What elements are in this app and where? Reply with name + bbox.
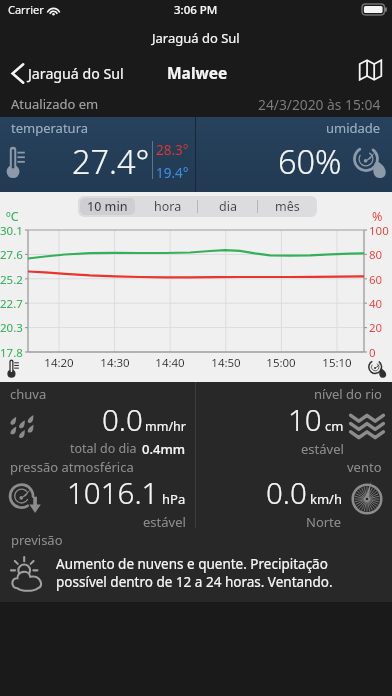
staticText: 1016.1	[67, 472, 159, 512]
staticText: 17.8	[0, 345, 24, 361]
staticText: 24/3/2020 às 15:04	[258, 95, 381, 114]
staticText: mm/hr	[145, 418, 186, 435]
staticText: 0.4mm	[142, 440, 186, 455]
staticText: 60	[369, 272, 383, 288]
staticText: Carrier	[8, 2, 44, 17]
staticText: 20	[369, 320, 383, 336]
staticText: 14:30	[97, 355, 133, 371]
button[interactable]: pressão atmosférica	[0, 455, 195, 528]
staticText: 100	[369, 223, 389, 239]
staticText: 10	[288, 399, 322, 439]
button[interactable]: chuva	[0, 382, 195, 455]
button[interactable]: temperatura	[0, 117, 195, 192]
button[interactable]: Back to Jaraguá do Sul	[0, 53, 132, 86]
staticText: Malwee	[167, 62, 228, 83]
staticText: 0.0	[266, 472, 307, 512]
staticText: Aumento de nuvens e quente. Precipitação…	[56, 555, 378, 591]
staticText: estável	[143, 513, 186, 528]
staticText: previsão	[11, 531, 63, 549]
staticText: 0	[369, 345, 376, 361]
staticText: 3:06 PM	[174, 2, 218, 18]
button[interactable]: nível do rio	[196, 382, 392, 455]
staticText: 27.6	[0, 247, 24, 263]
staticText: Jaraguá do Sul	[152, 29, 240, 47]
staticText: hora	[154, 198, 182, 215]
staticText: temperatura	[11, 119, 89, 137]
staticText: 10 min	[87, 198, 128, 215]
staticText: 30.1	[0, 223, 24, 239]
staticText: 0.0	[102, 399, 143, 439]
staticText: 25.2	[0, 272, 24, 288]
button[interactable]: previsão	[0, 528, 392, 602]
staticText: 20.3	[0, 320, 24, 336]
staticText: 28.3°	[156, 141, 189, 159]
staticText: Atualizado em	[11, 95, 99, 113]
staticText: 80	[369, 247, 383, 263]
staticText: 14:40	[152, 355, 188, 371]
staticText: 15:00	[263, 355, 299, 371]
button[interactable]: umidade	[196, 117, 392, 192]
button[interactable]: hora	[140, 198, 195, 215]
staticText: nível do rio	[314, 385, 382, 403]
button[interactable]: mês	[260, 198, 315, 215]
staticText: 27.4°	[72, 139, 150, 183]
staticText: Norte	[306, 513, 342, 528]
staticText: 19.4°	[156, 164, 189, 182]
staticText: total do dia	[70, 440, 137, 455]
staticText: 60%	[278, 139, 342, 183]
button[interactable]: Map	[348, 48, 392, 91]
button[interactable]: vento	[196, 455, 392, 528]
staticText: 14:50	[208, 355, 244, 371]
staticText: vento	[347, 458, 382, 476]
staticText: Jaraguá do Sul	[28, 64, 124, 83]
staticText: 22.7	[0, 296, 24, 312]
staticText: 40	[369, 296, 383, 312]
staticText: cm	[325, 417, 344, 435]
staticText: %	[372, 208, 383, 225]
staticText: 14:20	[41, 355, 77, 371]
staticText: chuva	[10, 385, 47, 403]
staticText: estável	[301, 440, 344, 455]
staticText: hPa	[162, 490, 186, 508]
staticText: ºC	[6, 208, 19, 225]
button[interactable]: dia	[200, 198, 255, 215]
staticText: pressão atmosférica	[10, 458, 134, 476]
staticText: mês	[275, 198, 300, 215]
staticText: umidade	[326, 119, 381, 137]
button[interactable]: 10 min	[80, 198, 135, 215]
staticText: dia	[219, 198, 237, 215]
staticText: km/h	[310, 490, 342, 508]
staticText: 15:10	[319, 355, 355, 371]
